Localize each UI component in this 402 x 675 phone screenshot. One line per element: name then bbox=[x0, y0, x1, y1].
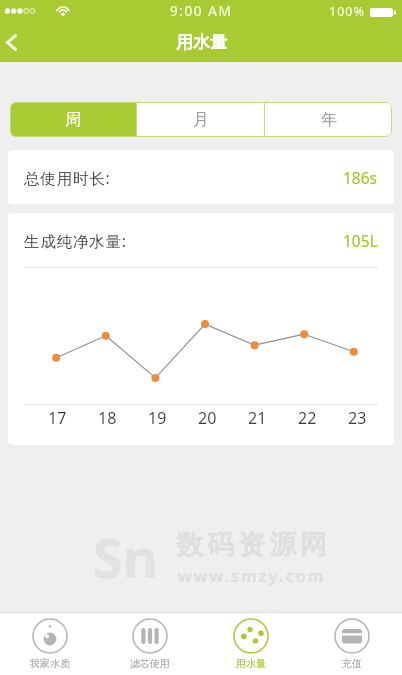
staticText: Sn bbox=[93, 520, 158, 594]
staticText: 18 bbox=[98, 407, 117, 429]
button[interactable]: 滤芯使用 bbox=[100, 613, 200, 675]
button[interactable]: 周 bbox=[10, 102, 136, 137]
staticText: 100% bbox=[329, 3, 365, 20]
staticText: 186s bbox=[343, 167, 378, 188]
staticText: 17 bbox=[48, 407, 67, 429]
staticText: 105L bbox=[343, 230, 378, 251]
staticText: 21 bbox=[248, 407, 267, 429]
staticText: 滤芯使用 bbox=[130, 657, 170, 670]
staticText: 数码资源网 bbox=[174, 528, 329, 562]
button[interactable]: 用水量 bbox=[200, 613, 301, 675]
button[interactable]: 月 bbox=[137, 102, 264, 137]
staticText: 月 bbox=[193, 110, 209, 130]
staticText: 9:00 AM bbox=[170, 2, 233, 20]
staticText: 总使用时长: bbox=[24, 167, 111, 188]
staticText: 生成纯净水量: bbox=[24, 230, 127, 251]
staticText: 我家水质 bbox=[30, 657, 70, 670]
staticText: 19 bbox=[148, 407, 167, 429]
button[interactable]: 总使用时长: bbox=[8, 150, 394, 204]
staticText: 22 bbox=[298, 407, 317, 429]
button[interactable] bbox=[0, 22, 34, 62]
staticText: 周 bbox=[65, 110, 81, 130]
staticText: 充值 bbox=[342, 657, 362, 670]
staticText: 23 bbox=[348, 407, 367, 429]
staticText: 用水量 bbox=[236, 657, 266, 670]
staticText: 用水量 bbox=[176, 32, 227, 53]
button[interactable]: 我家水质 bbox=[0, 613, 100, 675]
button[interactable]: 年 bbox=[265, 102, 392, 137]
staticText: www.smzy.com bbox=[178, 565, 326, 587]
staticText: 年 bbox=[321, 110, 337, 130]
staticText: 20 bbox=[198, 407, 217, 429]
button[interactable]: 充值 bbox=[301, 613, 402, 675]
